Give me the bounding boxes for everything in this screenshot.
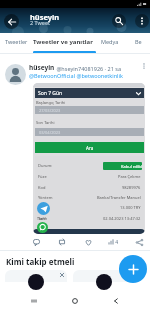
button[interactable]: Profile photo: [5, 64, 26, 85]
staticText: 27/03/2023: [39, 108, 61, 113]
button[interactable]: Dismiss: [125, 270, 135, 280]
staticText: hüseyin: [30, 12, 60, 22]
staticText: 98289976: [122, 185, 141, 190]
button[interactable]: Be: [135, 31, 142, 52]
button[interactable]: WhatsApp: [37, 222, 48, 233]
staticText: Son Tarihi: [36, 120, 55, 125]
staticText: Ara: [86, 145, 94, 151]
button[interactable]: More options: [135, 14, 149, 28]
button[interactable]: Like: [82, 236, 94, 248]
staticText: 2 Tweet: [30, 19, 51, 26]
button[interactable]: Tweet options: [140, 62, 148, 70]
button[interactable]: Suggested account: [5, 270, 67, 309]
button[interactable]: Suggested account: [73, 270, 135, 309]
staticText: Tarih: [37, 216, 46, 221]
staticText: 02.04.2023 13:47:32: [103, 216, 141, 221]
button[interactable]: Ara: [35, 142, 144, 153]
button[interactable]: Share: [133, 236, 145, 248]
button[interactable]: Back: [109, 294, 123, 308]
button[interactable]: Home: [68, 294, 82, 308]
button[interactable]: Compose Tweet: [119, 255, 147, 283]
staticText: Son 7 Gün: [38, 90, 63, 97]
staticText: Medya: [101, 38, 119, 45]
button[interactable]: Back: [4, 14, 19, 29]
button[interactable]: Medya: [101, 31, 119, 52]
staticText: hüseyin: [29, 63, 55, 72]
staticText: 13.000 TRY: [120, 205, 141, 210]
staticText: Kod: [38, 185, 46, 190]
button[interactable]: Dismiss: [57, 270, 67, 280]
staticText: 4: [114, 239, 119, 246]
staticText: Füze: [38, 174, 47, 179]
staticText: Kimi takip etmeli: [6, 256, 75, 267]
button[interactable]: Tweet image: [33, 83, 145, 234]
staticText: Tweetler ve yanıtlar: [33, 38, 93, 46]
button[interactable]: Search: [112, 14, 126, 28]
button[interactable]: Tweetler ve yanıtlar: [33, 31, 93, 52]
staticText: Kabul edildi: [121, 164, 142, 169]
button[interactable]: Retweet: [56, 236, 68, 248]
button[interactable]: Recents: [27, 294, 41, 308]
staticText: Tarih: [38, 216, 48, 221]
staticText: Para Çekme: [118, 174, 141, 179]
button[interactable]: Reply: [30, 236, 42, 248]
staticText: @BetwoonOfficial @betwoonetkinlik: [29, 72, 123, 79]
staticText: Durum:: [38, 163, 53, 168]
button[interactable]: Telegram: [37, 202, 50, 215]
button[interactable]: View count: [108, 236, 119, 248]
staticText: Tweetler: [5, 38, 28, 45]
staticText: Banka/Transfer Manuel: [97, 195, 141, 200]
staticText: Başlangıç Tarihi: [36, 100, 66, 105]
button[interactable]: Tweetler: [5, 31, 28, 52]
staticText: Be: [135, 38, 142, 45]
staticText: Yöntem: [38, 195, 53, 200]
staticText: 03/04/2023: [39, 130, 61, 135]
staticText: @hseyin74081926 · 21 sa: [55, 65, 121, 72]
